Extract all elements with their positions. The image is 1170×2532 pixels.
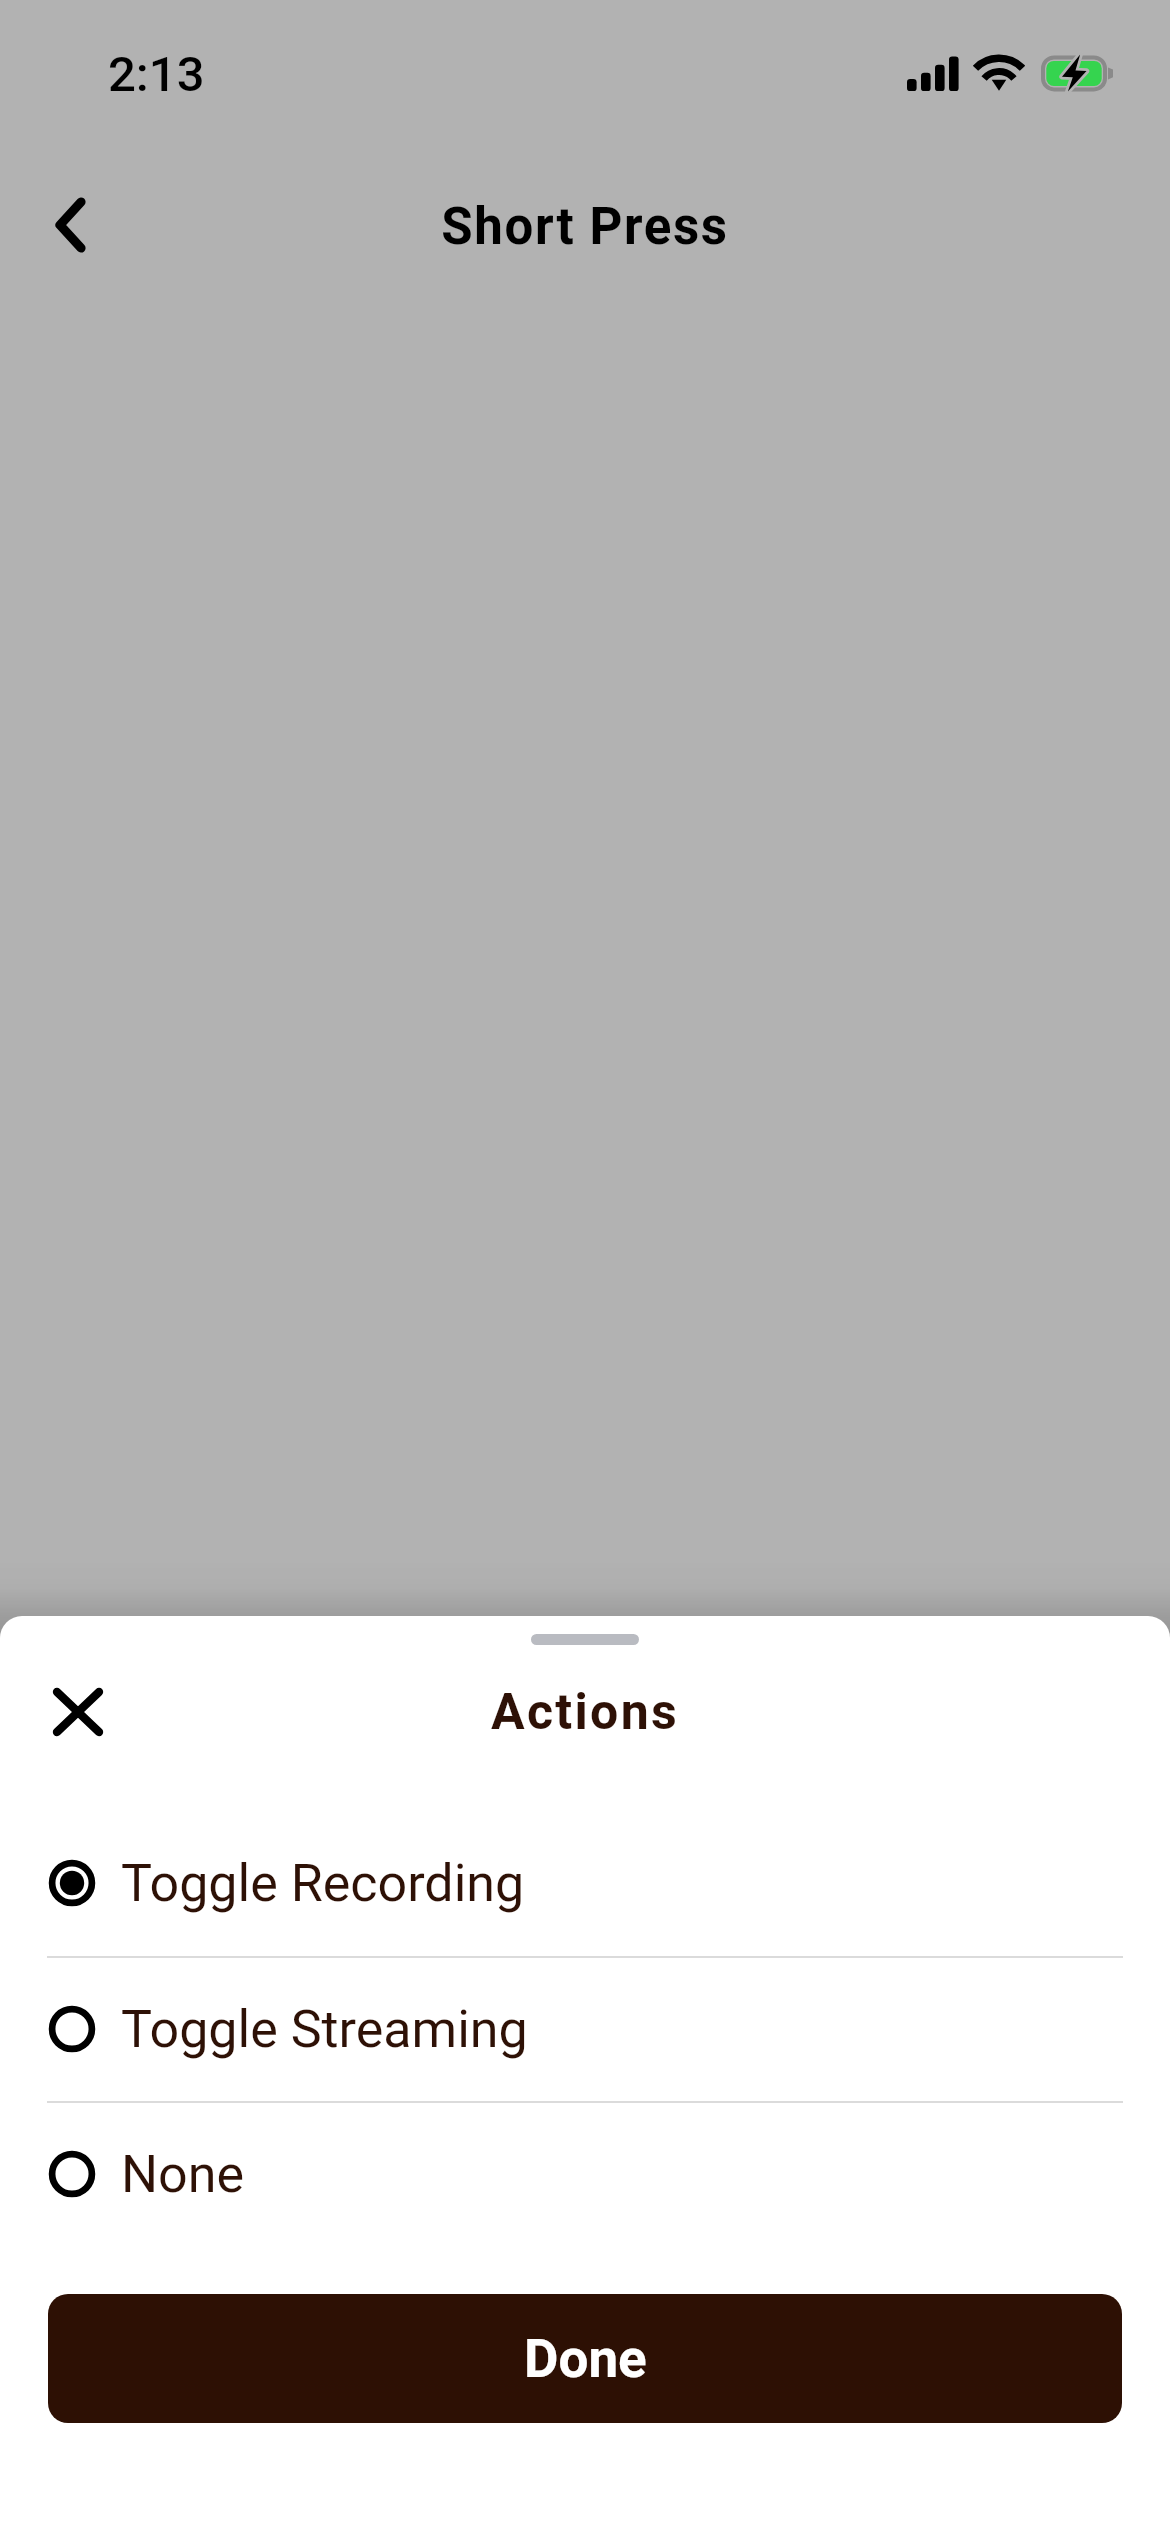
staticText: Actions [491,1683,680,1742]
staticText: Short Press [441,197,729,257]
button[interactable]: Done [48,2294,1122,2423]
staticText: None [121,2144,245,2205]
button[interactable]: Toggle Streaming [0,1957,1170,2101]
staticText: Toggle Recording [121,1853,525,1914]
staticText: Done [524,2328,647,2390]
staticText: 2:13 [108,46,205,103]
button[interactable]: None [0,2102,1170,2246]
staticText: Toggle Streaming [121,1999,528,2060]
button[interactable]: Close [27,1661,128,1762]
button[interactable]: Toggle Recording [0,1811,1170,1955]
button[interactable]: Back [25,180,115,270]
